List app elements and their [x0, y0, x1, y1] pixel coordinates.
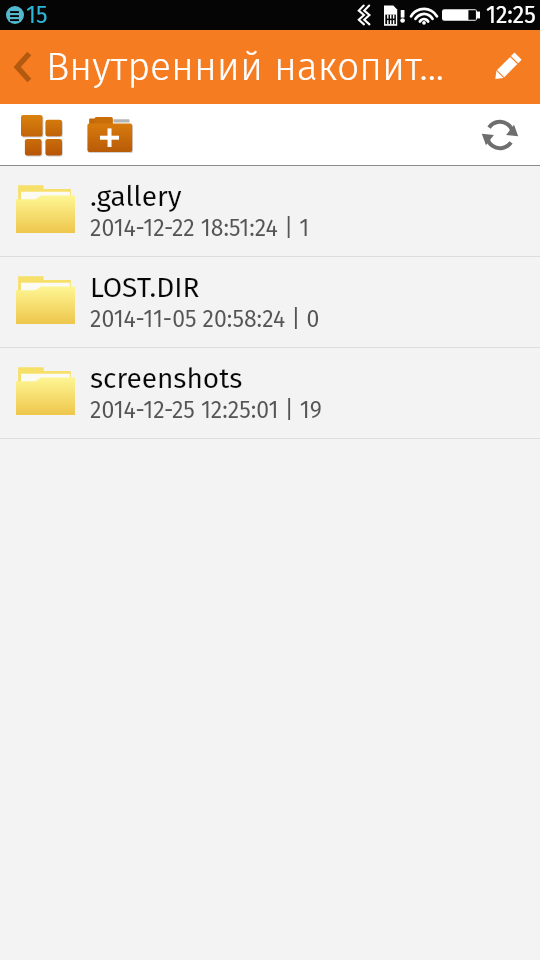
staticText: Внутренний накопит...: [46, 44, 474, 91]
button[interactable]: Back: [0, 30, 46, 104]
staticText: 2014-12-25 12:25:01 | 19: [90, 396, 322, 424]
staticText: 2014-12-22 18:51:24 | 1: [90, 214, 310, 242]
staticText: LOST.DIR: [90, 271, 200, 305]
staticText: 12:25: [486, 1, 536, 29]
staticText: 15: [26, 1, 48, 29]
staticText: .gallery: [90, 180, 182, 214]
button[interactable]: .gallery: [0, 166, 540, 257]
button[interactable]: Edit: [474, 30, 540, 104]
button[interactable]: New folder: [76, 104, 144, 166]
button[interactable]: Refresh: [471, 104, 529, 166]
staticText: screenshots: [90, 362, 243, 396]
button[interactable]: LOST.DIR: [0, 257, 540, 348]
button[interactable]: Grid view: [10, 104, 72, 166]
button[interactable]: screenshots: [0, 348, 540, 439]
staticText: 2014-11-05 20:58:24 | 0: [90, 305, 320, 333]
